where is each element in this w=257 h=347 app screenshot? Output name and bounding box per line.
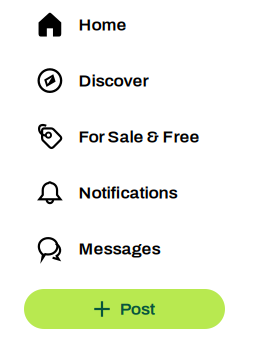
staticText: Post	[120, 300, 155, 318]
button[interactable]: Messages	[0, 224, 257, 274]
button[interactable]: For Sale & Free	[0, 112, 257, 162]
button[interactable]: Post	[24, 289, 225, 329]
staticText: Messages	[79, 239, 161, 258]
staticText: For Sale & Free	[79, 127, 200, 146]
button[interactable]: Discover	[0, 56, 257, 106]
button[interactable]: Notifications	[0, 168, 257, 218]
staticText: Notifications	[79, 183, 178, 202]
staticText: Home	[79, 15, 127, 34]
button[interactable]: Home	[0, 0, 257, 50]
staticText: Discover	[79, 71, 149, 90]
